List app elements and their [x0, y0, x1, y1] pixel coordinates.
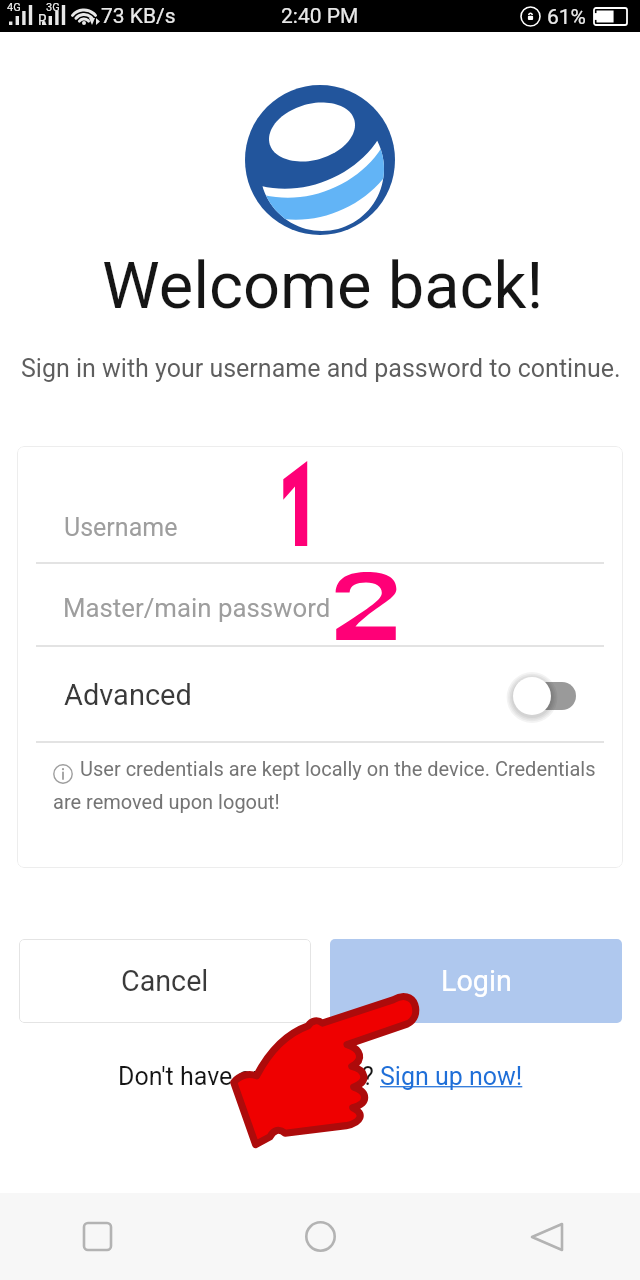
button[interactable]: Login — [330, 939, 622, 1023]
button[interactable]: Sign up now! — [380, 1062, 523, 1091]
button[interactable]: Recent apps — [0, 1193, 214, 1280]
staticText: Login — [441, 964, 512, 998]
staticText: Don't have an account? — [118, 1062, 380, 1091]
button[interactable]: Home — [214, 1193, 427, 1280]
button[interactable]: Back — [427, 1193, 640, 1280]
staticText: are removed upon logout! — [53, 790, 280, 813]
staticText: 61% — [547, 5, 586, 30]
button[interactable]: Advanced — [36, 647, 604, 742]
staticText: Sign in with your username and password … — [21, 354, 621, 383]
staticText: Advanced — [64, 678, 192, 712]
button[interactable]: Master/main password — [36, 564, 604, 646]
staticText: 4G — [7, 1, 21, 14]
staticText: User credentials are kept locally on the… — [80, 757, 596, 780]
staticText: Sign up now! — [380, 1062, 523, 1091]
staticText: 3G — [46, 1, 60, 14]
staticText: 73 KB/s — [101, 4, 176, 29]
staticText: R — [38, 12, 47, 28]
staticText: Username — [64, 513, 178, 542]
staticText: Master/main password — [63, 593, 331, 623]
button[interactable]: Username — [36, 454, 604, 563]
staticText: Cancel — [121, 964, 209, 998]
staticText: Welcome back! — [102, 248, 544, 324]
staticText: 2:40 PM — [281, 4, 359, 29]
button[interactable]: Cancel — [19, 939, 311, 1023]
